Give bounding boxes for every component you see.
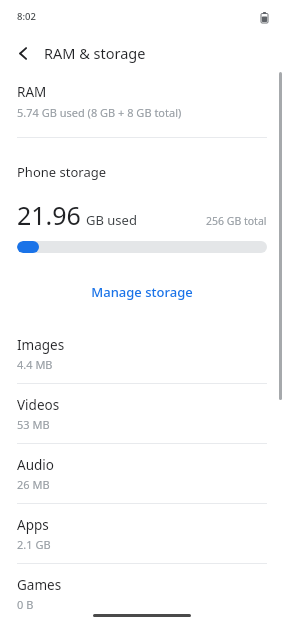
staticText: Games bbox=[17, 576, 62, 594]
staticText: 26 MB bbox=[17, 477, 50, 492]
staticText: Videos bbox=[17, 396, 60, 414]
staticText: RAM & storage bbox=[44, 43, 146, 63]
button[interactable]: Audio bbox=[0, 444, 284, 503]
staticText: 21.96 bbox=[17, 198, 81, 232]
staticText: Audio bbox=[17, 456, 54, 474]
staticText: 256 GB total bbox=[206, 214, 267, 228]
staticText: 2.1 GB bbox=[17, 537, 51, 552]
staticText: 0 B bbox=[17, 597, 34, 612]
staticText: Apps bbox=[17, 516, 49, 534]
staticText: 5.74 GB used (8 GB + 8 GB total) bbox=[17, 105, 182, 120]
button[interactable]: Apps bbox=[0, 504, 284, 563]
button[interactable]: Videos bbox=[0, 384, 284, 443]
staticText: Images bbox=[17, 336, 65, 354]
staticText: RAM bbox=[17, 83, 47, 101]
staticText: 8:02 bbox=[17, 10, 36, 23]
button[interactable]: Images bbox=[0, 324, 284, 383]
button[interactable]: RAM bbox=[0, 83, 284, 120]
staticText: 53 MB bbox=[17, 417, 50, 432]
staticText: Phone storage bbox=[17, 163, 107, 181]
button[interactable]: Manage storage bbox=[0, 275, 284, 309]
staticText: GB used bbox=[86, 211, 137, 229]
button[interactable]: Back bbox=[8, 38, 38, 68]
button[interactable]: Games bbox=[0, 564, 284, 623]
staticText: 4.4 MB bbox=[17, 357, 53, 372]
staticText: Manage storage bbox=[91, 283, 193, 301]
